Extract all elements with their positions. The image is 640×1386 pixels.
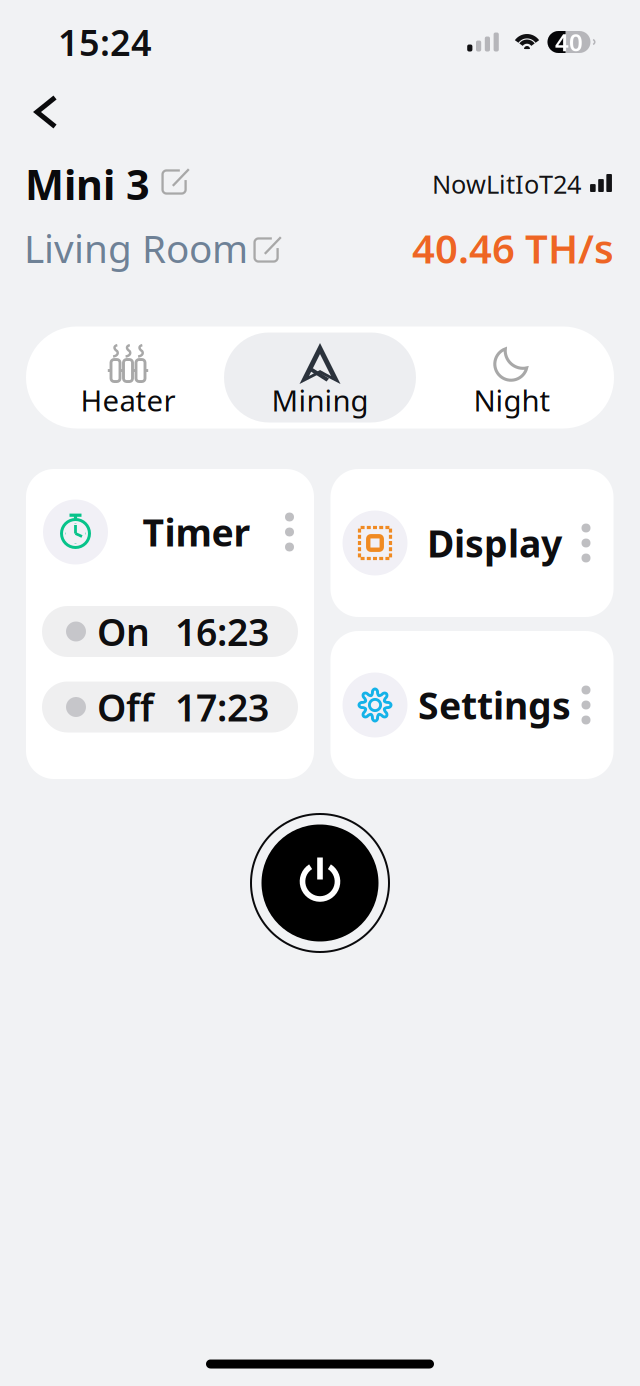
staticText: Living Room bbox=[24, 222, 248, 274]
staticText: Settings bbox=[418, 680, 571, 730]
staticText: Off bbox=[97, 682, 154, 732]
staticText: Mini 3 bbox=[25, 157, 150, 211]
button[interactable]: Back bbox=[16, 84, 76, 140]
button[interactable]: Display bbox=[330, 469, 613, 617]
button[interactable]: Rename room bbox=[240, 226, 296, 274]
staticText: 17:23 bbox=[175, 682, 269, 732]
staticText: 40.46 TH/s bbox=[412, 221, 614, 274]
button[interactable]: Power bbox=[248, 811, 392, 955]
button[interactable]: Night bbox=[416, 332, 608, 422]
staticText: 40 bbox=[555, 26, 583, 58]
button[interactable]: Rename device bbox=[148, 158, 204, 206]
staticText: Heater bbox=[80, 380, 175, 419]
staticText: On bbox=[97, 607, 150, 656]
button[interactable]: Off bbox=[42, 681, 298, 732]
staticText: Timer bbox=[142, 507, 250, 557]
staticText: NowLitIoT24 bbox=[432, 167, 581, 201]
staticText: Display bbox=[427, 518, 562, 568]
button[interactable]: Settings bbox=[330, 631, 613, 779]
staticText: Night bbox=[473, 380, 550, 419]
staticText: 15:24 bbox=[58, 18, 152, 66]
staticText: 16:23 bbox=[175, 607, 269, 656]
button[interactable]: Mining bbox=[224, 332, 416, 422]
button[interactable]: Heater bbox=[32, 332, 224, 422]
button[interactable]: On bbox=[42, 606, 298, 657]
staticText: Mining bbox=[271, 380, 368, 419]
